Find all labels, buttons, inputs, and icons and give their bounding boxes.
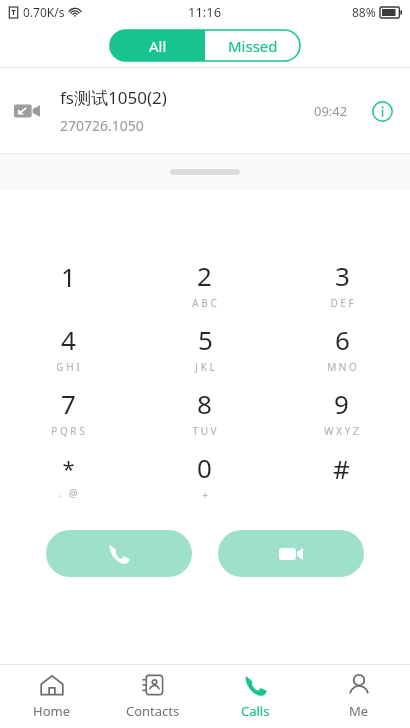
button[interactable]: Calls bbox=[204, 665, 307, 728]
button[interactable]: Call details bbox=[368, 97, 396, 125]
button[interactable]: Video call bbox=[218, 530, 364, 577]
button[interactable]: fs测试1050(2) bbox=[0, 68, 410, 153]
staticText: 6 bbox=[335, 322, 350, 357]
button[interactable]: Missed bbox=[205, 30, 300, 61]
staticText: P Q R S bbox=[51, 424, 85, 438]
button[interactable]: Voice call bbox=[46, 530, 192, 577]
staticText: 270726.1050 bbox=[60, 116, 144, 135]
button[interactable]: All bbox=[110, 30, 205, 61]
staticText: Me bbox=[349, 702, 369, 720]
staticText: + bbox=[202, 488, 208, 502]
staticText: T U V bbox=[192, 424, 217, 438]
staticText: 1 bbox=[61, 259, 76, 294]
staticText: 8 bbox=[197, 386, 212, 421]
staticText: Contacts bbox=[126, 702, 180, 720]
staticText: Home bbox=[33, 702, 70, 720]
button[interactable]: 4 bbox=[0, 316, 136, 380]
staticText: . @ bbox=[58, 486, 78, 500]
staticText: 4 bbox=[61, 322, 76, 357]
staticText: M N O bbox=[327, 360, 357, 374]
staticText: A B C bbox=[192, 296, 217, 310]
staticText: D E F bbox=[330, 296, 354, 310]
button[interactable]: 1 bbox=[0, 252, 136, 316]
button[interactable]: Contacts bbox=[102, 665, 204, 728]
staticText: 7 bbox=[61, 386, 76, 421]
staticText: G H I bbox=[56, 360, 80, 374]
button[interactable]: * bbox=[0, 444, 136, 508]
staticText: 11:16 bbox=[188, 3, 222, 21]
button[interactable]: # bbox=[273, 444, 410, 508]
button[interactable]: Home bbox=[0, 665, 102, 728]
staticText: 0 bbox=[197, 450, 212, 485]
staticText: fs测试1050(2) bbox=[60, 86, 167, 109]
staticText: * bbox=[62, 453, 75, 483]
staticText: W X Y Z bbox=[324, 424, 359, 438]
button[interactable]: 7 bbox=[0, 380, 136, 444]
staticText: Calls bbox=[241, 702, 270, 720]
button[interactable]: 6 bbox=[273, 316, 410, 380]
staticText: 9 bbox=[334, 386, 349, 421]
staticText: 3 bbox=[335, 258, 350, 293]
staticText: 88% bbox=[352, 4, 376, 20]
staticText: 0.70K/s bbox=[23, 4, 65, 20]
button[interactable]: 9 bbox=[273, 380, 410, 444]
button[interactable]: 0 bbox=[136, 444, 273, 508]
button[interactable]: 2 bbox=[136, 252, 273, 316]
button[interactable]: 5 bbox=[136, 316, 273, 380]
staticText: 2 bbox=[197, 258, 212, 293]
button[interactable]: Me bbox=[307, 665, 410, 728]
staticText: 5 bbox=[198, 322, 213, 357]
button[interactable]: 8 bbox=[136, 380, 273, 444]
staticText: All bbox=[149, 36, 167, 56]
staticText: # bbox=[333, 451, 350, 486]
staticText: J K L bbox=[195, 360, 215, 374]
staticText: Missed bbox=[228, 36, 278, 56]
button[interactable]: 3 bbox=[273, 252, 410, 316]
staticText: 09:42 bbox=[314, 102, 348, 120]
